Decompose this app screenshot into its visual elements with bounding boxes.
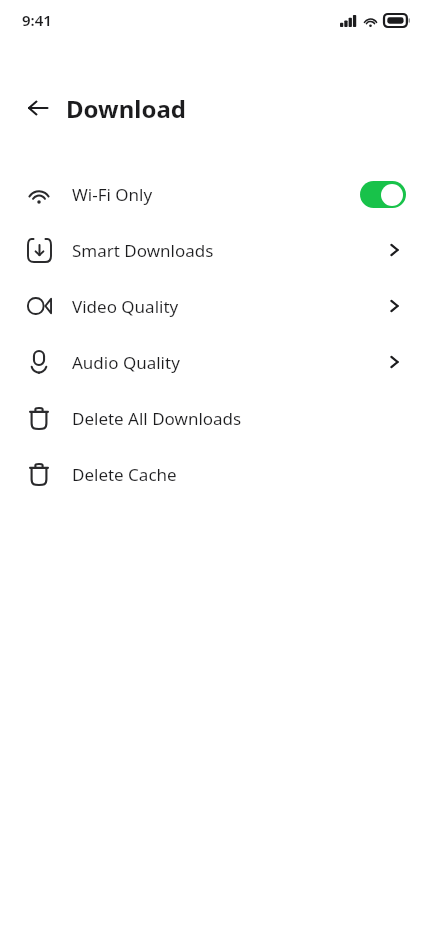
staticText: Audio Quality xyxy=(72,351,180,374)
staticText: 9:41 xyxy=(22,10,52,30)
staticText: Wi-Fi Only xyxy=(72,183,153,206)
staticText: Download xyxy=(66,92,186,125)
staticText: Delete Cache xyxy=(72,463,177,486)
button[interactable]: Video Quality xyxy=(0,278,428,334)
button[interactable]: Wi-Fi Only toggle xyxy=(360,181,406,208)
button[interactable]: Audio Quality xyxy=(0,334,428,390)
button[interactable]: Delete Cache xyxy=(0,446,428,502)
button[interactable]: Delete All Downloads xyxy=(0,390,428,446)
staticText: Smart Downloads xyxy=(72,239,214,262)
staticText: Delete All Downloads xyxy=(72,407,242,430)
button[interactable]: Back xyxy=(14,84,62,132)
button[interactable]: Wi-Fi Only xyxy=(0,166,428,222)
button[interactable]: Smart Downloads xyxy=(0,222,428,278)
staticText: Video Quality xyxy=(72,295,179,318)
